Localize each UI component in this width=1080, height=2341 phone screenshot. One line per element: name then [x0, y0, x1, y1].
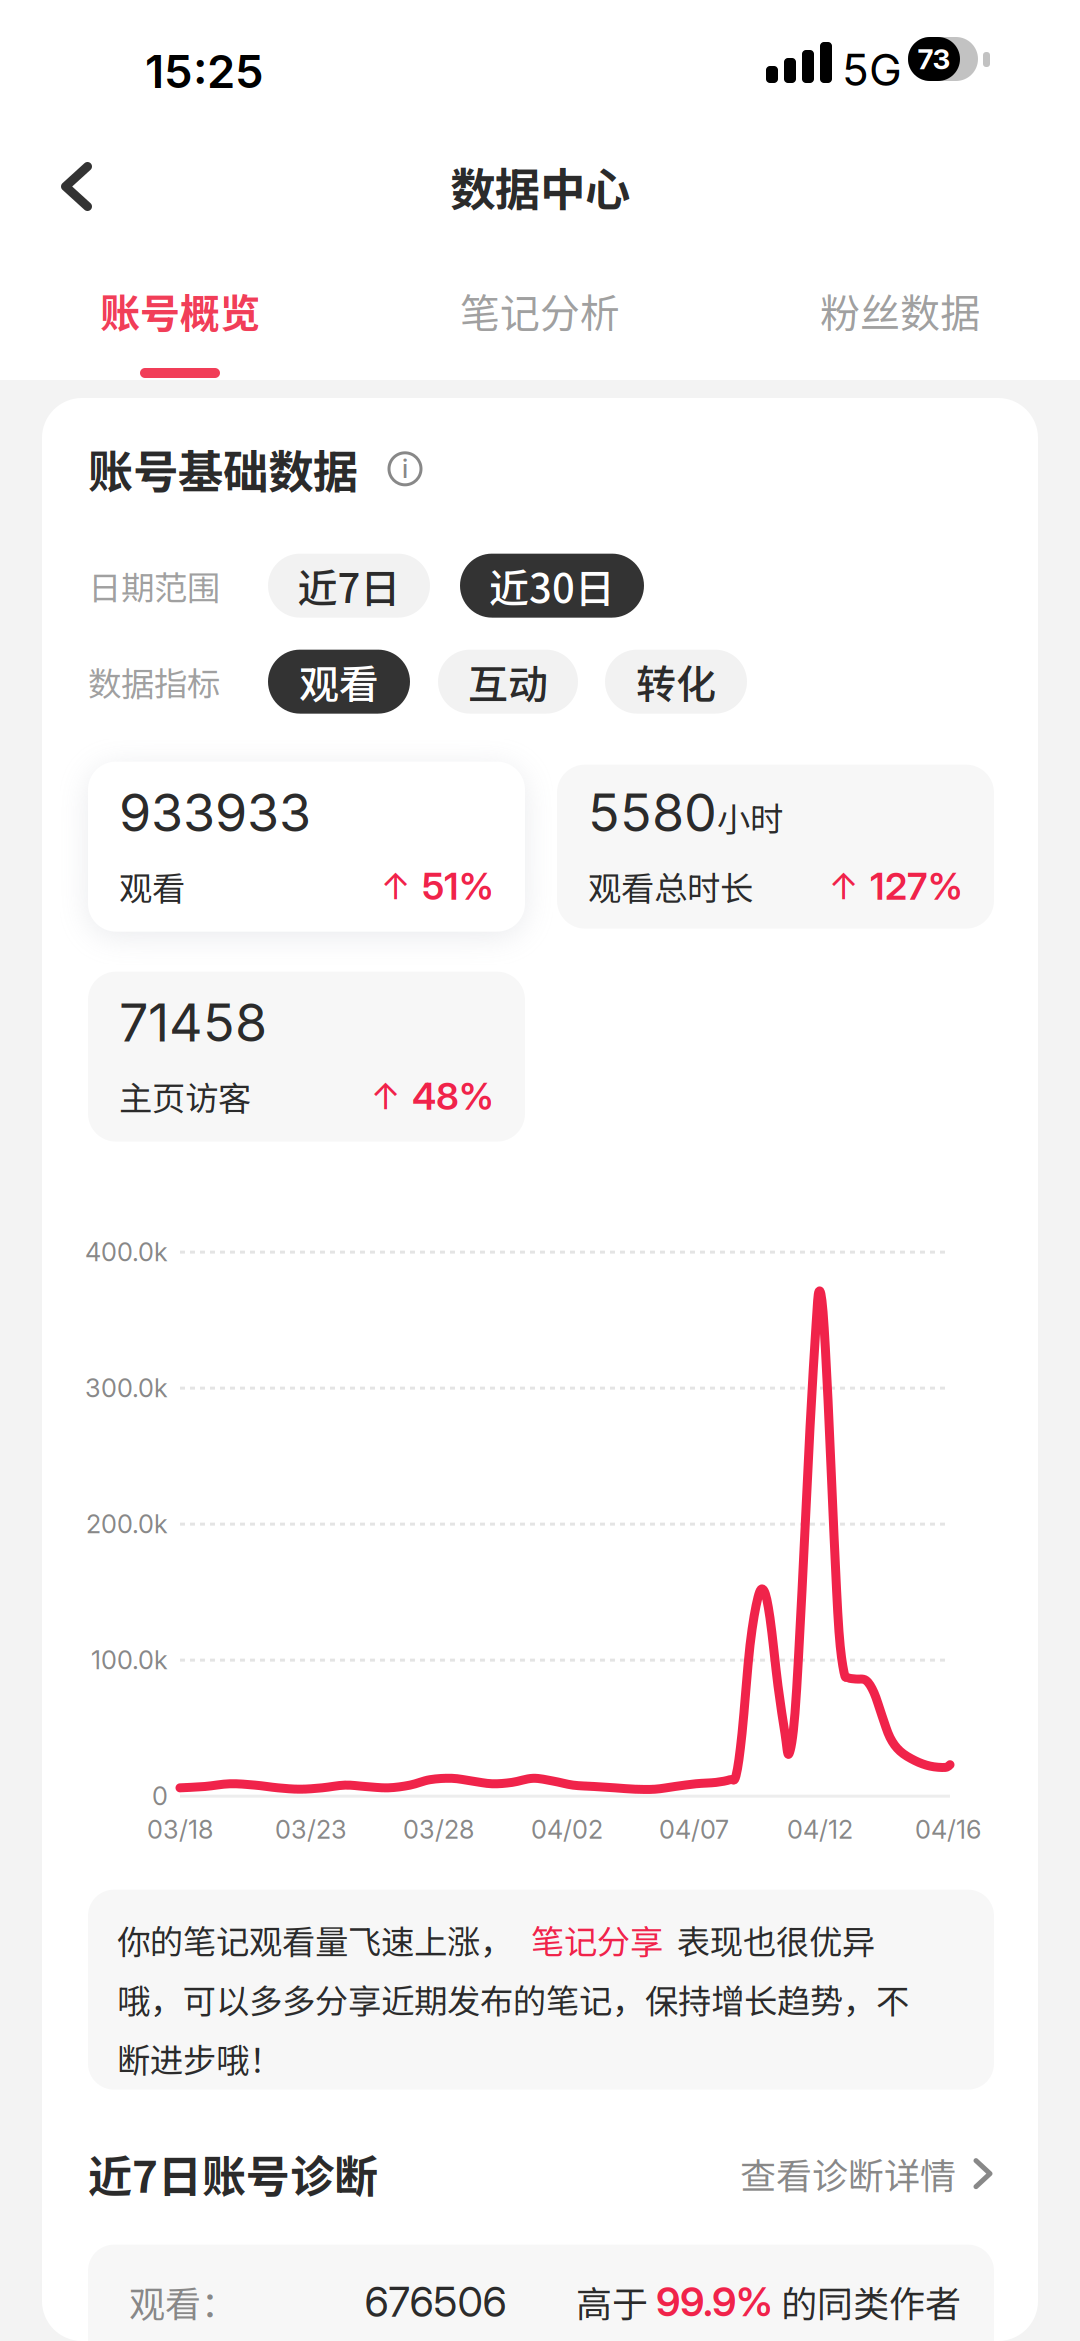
button[interactable]: 近7日	[268, 554, 430, 618]
staticText: 0	[152, 1781, 168, 1811]
staticText: 933933	[119, 781, 311, 844]
staticText: ↑	[381, 864, 410, 908]
staticText: 200.0k	[86, 1509, 168, 1539]
button[interactable]: 933933	[88, 762, 525, 932]
staticText: 主页访客	[119, 1072, 251, 1120]
staticText: 03/28	[403, 1814, 474, 1845]
staticText: 观看：	[129, 2276, 237, 2328]
button[interactable]: 5580	[557, 765, 994, 929]
staticText: 笔记分析	[460, 281, 620, 339]
staticText: i	[402, 453, 408, 484]
staticText: 笔记分享	[531, 1916, 663, 1964]
button[interactable]: 观看	[268, 650, 410, 714]
staticText: 71458	[119, 991, 267, 1054]
button[interactable]: 说明	[376, 440, 434, 498]
button[interactable]: 查看诊断详情	[740, 2148, 994, 2200]
staticText: 近7日账号诊断	[88, 2142, 378, 2205]
staticText: 数据中心	[450, 154, 630, 219]
staticText: 近30日	[489, 557, 615, 615]
staticText: 400.0k	[85, 1237, 168, 1267]
staticText: ↑	[371, 1074, 400, 1118]
button[interactable]: 近30日	[460, 554, 644, 618]
staticText: 73	[917, 42, 950, 76]
staticText: 04/12	[787, 1814, 853, 1845]
staticText: 粉丝数据	[820, 281, 980, 339]
staticText: 127%	[870, 863, 963, 909]
staticText: 观看	[119, 862, 185, 910]
button[interactable]: 返回	[0, 120, 153, 253]
staticText: 日期范围	[88, 561, 220, 610]
staticText: 48%	[412, 1073, 494, 1119]
button[interactable]: 71458	[88, 972, 525, 1142]
staticText: 5580	[588, 781, 717, 844]
staticText: 300.0k	[85, 1373, 168, 1403]
button[interactable]: 账号概览	[0, 253, 360, 380]
button[interactable]: 粉丝数据	[720, 253, 1080, 380]
staticText: 观看	[299, 653, 379, 711]
staticText: 676506	[364, 2277, 506, 2327]
staticText: 断进步哦！	[117, 2034, 282, 2082]
staticText: 观看总时长	[588, 862, 753, 910]
staticText: 03/23	[275, 1814, 347, 1845]
staticText: 近7日	[297, 557, 400, 615]
button[interactable]: 互动	[438, 650, 578, 714]
staticText: ↑	[829, 864, 858, 908]
button[interactable]: 笔记分析	[360, 253, 720, 380]
staticText: 转化	[636, 653, 716, 711]
staticText: 互动	[468, 653, 548, 711]
staticText: 5G	[842, 43, 902, 96]
staticText: 03/18	[147, 1814, 213, 1845]
staticText: 哦，可以多多分享近期发布的笔记，保持增长趋势，不	[117, 1975, 909, 2023]
staticText: 04/07	[659, 1814, 729, 1845]
staticText: 99.9%	[656, 2277, 773, 2326]
staticText: 账号基础数据	[88, 436, 358, 502]
staticText: 你的笔记观看量飞速上涨，	[117, 1916, 513, 1964]
staticText: 数据指标	[88, 657, 220, 706]
staticText: 100.0k	[91, 1645, 168, 1675]
staticText: 表现也很优异	[677, 1916, 875, 1964]
staticText: 04/02	[531, 1814, 603, 1845]
staticText: 小时	[717, 793, 783, 841]
staticText: 51%	[422, 863, 494, 909]
staticText: 高于	[576, 2276, 656, 2328]
button[interactable]: 转化	[605, 650, 747, 714]
staticText: 的同类作者	[773, 2276, 961, 2328]
staticText: 15:25	[145, 44, 264, 99]
staticText: 04/16	[915, 1814, 981, 1845]
staticText: 账号概览	[100, 281, 260, 339]
staticText: 查看诊断详情	[740, 2148, 956, 2200]
